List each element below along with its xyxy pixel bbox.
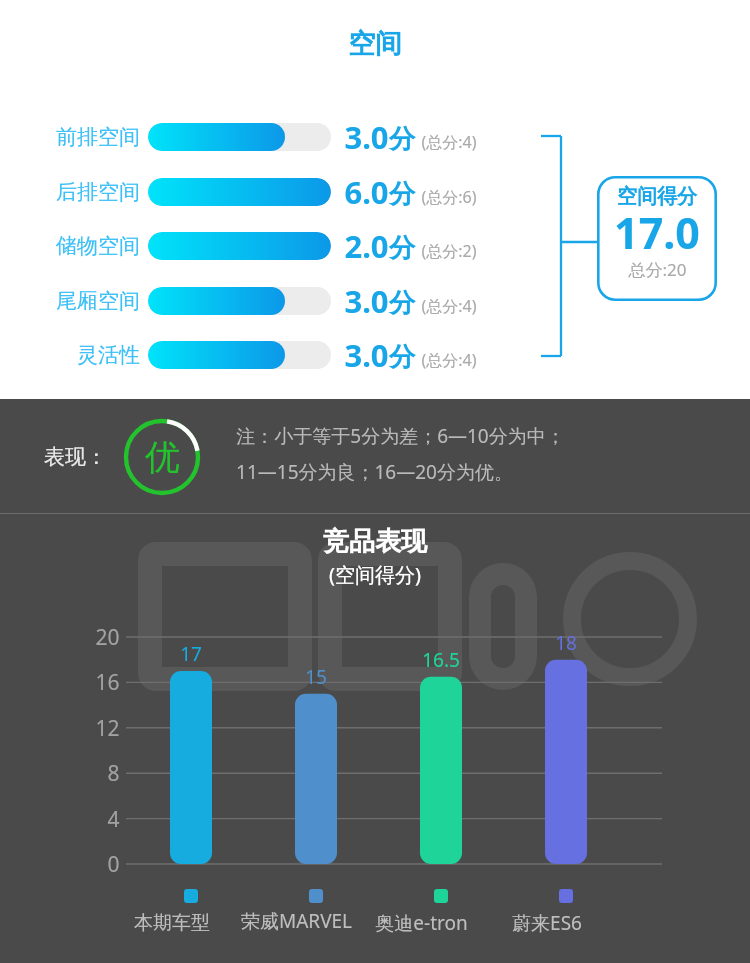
staticText: 空间得分 (617, 184, 697, 209)
staticText: 18 (555, 630, 577, 656)
staticText: 16 (95, 668, 120, 697)
staticText: 后排空间 (56, 179, 140, 205)
staticText: 竞品表现 (323, 525, 427, 558)
button[interactable]: 蔚来ES6 (484, 908, 609, 938)
button[interactable]: 空间得分 (597, 176, 717, 301)
staticText: 优 (145, 435, 180, 479)
staticText: 本期车型 (134, 911, 210, 935)
staticText: 表现： (44, 444, 107, 470)
button[interactable]: 前排空间 (0, 116, 477, 158)
staticText: 11—15分为良；16—20分为优。 (236, 459, 513, 485)
staticText: 20 (95, 623, 120, 652)
staticText: 分 (389, 178, 415, 211)
button[interactable]: 本期车型 (109, 908, 234, 938)
staticText: 17 (180, 641, 202, 667)
staticText: 16.5 (422, 647, 460, 673)
staticText: 总分:20 (628, 258, 687, 281)
staticText: 储物空间 (56, 233, 140, 259)
staticText: (总分:4) (421, 349, 477, 371)
staticText: 分 (389, 341, 415, 374)
staticText: 分 (389, 287, 415, 320)
staticText: 4 (107, 805, 120, 834)
staticText: (总分:2) (421, 240, 477, 262)
staticText: 3.0 (344, 334, 389, 376)
staticText: 注：小于等于5分为差；6—10分为中； (236, 423, 565, 449)
staticText: 前排空间 (56, 124, 140, 150)
staticText: 3.0 (344, 116, 389, 158)
button[interactable]: 评级 优 (122, 417, 202, 497)
staticText: 0 (107, 850, 120, 879)
staticText: (总分:4) (421, 295, 477, 317)
staticText: 尾厢空间 (56, 288, 140, 314)
staticText: 17.0 (614, 203, 700, 262)
staticText: (总分:4) (421, 131, 477, 153)
staticText: 15 (305, 664, 327, 690)
staticText: 分 (389, 123, 415, 156)
button[interactable]: 荣威MARVEL X (234, 908, 359, 938)
staticText: 荣威MARVEL X (234, 908, 359, 938)
staticText: (空间得分) (329, 561, 421, 588)
button[interactable]: 奥迪e-tron (359, 908, 484, 938)
staticText: 分 (389, 232, 415, 265)
staticText: 12 (95, 714, 120, 743)
staticText: (总分:6) (421, 186, 477, 208)
staticText: 灵活性 (77, 342, 140, 368)
staticText: 6.0 (344, 171, 389, 213)
staticText: 8 (107, 759, 120, 788)
staticText: 3.0 (344, 280, 389, 322)
staticText: 蔚来ES6 (512, 910, 582, 936)
button[interactable]: 灵活性 (0, 334, 477, 376)
button[interactable]: 储物空间 (0, 225, 477, 267)
staticText: 奥迪e-tron (375, 910, 468, 936)
staticText: 2.0 (344, 225, 389, 267)
staticText: 空间 (348, 27, 402, 61)
button[interactable]: 后排空间 (0, 171, 477, 213)
button[interactable]: 尾厢空间 (0, 280, 477, 322)
